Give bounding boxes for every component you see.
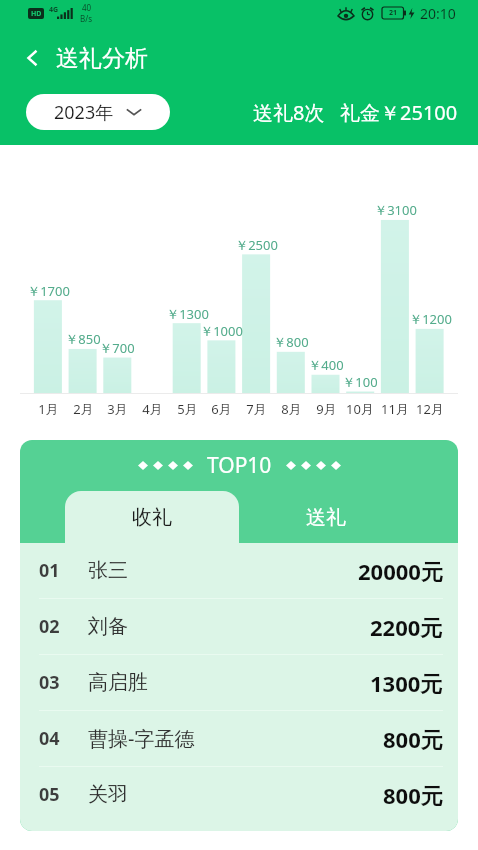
staticText: 7月 [246, 400, 267, 418]
staticText: 800元 [383, 780, 443, 810]
staticText: 3月 [107, 400, 128, 418]
staticText: 4G [49, 5, 59, 15]
staticText: 8月 [281, 400, 302, 418]
button[interactable]: 送礼 [239, 491, 413, 543]
staticText: B/s [80, 13, 93, 24]
staticText: 9月 [316, 400, 337, 418]
staticText: 1300元 [370, 668, 443, 698]
staticText: 10月 [346, 400, 374, 418]
button[interactable]: 2023年 [26, 94, 170, 130]
staticText: ￥3100 [374, 201, 417, 219]
staticText: 送礼8次 礼金￥25100 [253, 99, 458, 126]
staticText: 11月 [381, 400, 409, 418]
staticText: ￥800 [273, 333, 309, 351]
staticText: ￥850 [65, 330, 101, 348]
staticText: 张三 [88, 558, 128, 583]
button[interactable]: 04 [20, 711, 458, 767]
staticText: 12月 [416, 400, 444, 418]
staticText: 2200元 [370, 612, 443, 642]
button[interactable]: 05 [20, 767, 458, 822]
staticText: 2023年 [54, 100, 114, 125]
button[interactable]: 02 [20, 599, 458, 655]
button[interactable]: Back [12, 40, 54, 76]
staticText: ￥400 [308, 356, 344, 374]
button[interactable]: 01 [20, 543, 458, 599]
staticText: ￥700 [99, 339, 135, 357]
staticText: 01 [39, 558, 60, 583]
staticText: 20000元 [358, 556, 443, 586]
staticText: 送礼分析 [56, 44, 148, 73]
staticText: ￥1000 [200, 322, 243, 340]
staticText: 05 [39, 782, 60, 807]
staticText: 40 [82, 2, 92, 13]
staticText: HD [31, 9, 42, 19]
button[interactable]: 收礼 [65, 491, 239, 543]
staticText: 6月 [211, 400, 232, 418]
staticText: ￥1700 [27, 282, 70, 300]
staticText: 高启胜 [88, 670, 148, 695]
staticText: 04 [39, 726, 60, 751]
staticText: TOP10 [207, 451, 272, 480]
staticText: 收礼 [132, 505, 172, 530]
staticText: 1月 [38, 400, 59, 418]
staticText: ￥1200 [409, 310, 452, 328]
staticText: 送礼 [306, 505, 346, 530]
button[interactable]: 03 [20, 655, 458, 711]
staticText: 21 [389, 8, 398, 18]
staticText: 曹操-字孟德 [88, 725, 195, 752]
staticText: 800元 [383, 724, 443, 754]
staticText: 02 [39, 614, 60, 639]
staticText: 20:10 [420, 4, 456, 23]
staticText: ￥1300 [166, 305, 209, 323]
staticText: 关羽 [88, 782, 128, 807]
staticText: 刘备 [88, 614, 128, 639]
staticText: 03 [39, 670, 60, 695]
staticText: ￥2500 [235, 236, 278, 254]
staticText: 2月 [73, 400, 94, 418]
staticText: 4月 [142, 400, 163, 418]
staticText: ￥100 [342, 373, 378, 391]
staticText: 5月 [177, 400, 198, 418]
